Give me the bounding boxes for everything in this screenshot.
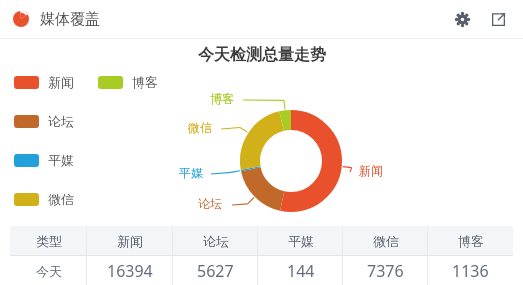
staticText: 新闻 [48, 74, 74, 90]
button[interactable]: Open externally [486, 7, 510, 31]
staticText: 类型 [36, 233, 62, 249]
staticText: 新闻 [359, 163, 383, 178]
button[interactable]: 新闻 [14, 74, 74, 90]
button[interactable]: 博客 [98, 74, 158, 90]
button[interactable]: 今天 [10, 256, 513, 285]
staticText: 论坛 [48, 113, 74, 129]
staticText: 7376 [367, 260, 404, 282]
staticText: 论坛 [203, 233, 229, 249]
staticText: 媒体覆盖 [40, 10, 100, 29]
button[interactable]: Settings [450, 7, 474, 31]
staticText: 平媒 [288, 233, 314, 249]
staticText: 博客 [458, 233, 484, 249]
staticText: 微信 [188, 120, 212, 135]
staticText: 5627 [197, 260, 234, 282]
staticText: 144 [287, 260, 315, 282]
staticText: 博客 [132, 74, 158, 90]
staticText: 微信 [373, 233, 399, 249]
staticText: 博客 [210, 91, 234, 106]
button[interactable]: 微信 [14, 191, 74, 207]
staticText: 新闻 [117, 233, 143, 249]
staticText: 今天 [36, 263, 62, 279]
staticText: 论坛 [198, 196, 222, 211]
staticText: 微信 [48, 191, 74, 207]
staticText: 平媒 [179, 165, 203, 180]
staticText: 今天检测总量走势 [198, 45, 326, 65]
staticText: 1136 [452, 260, 489, 282]
button[interactable]: 论坛 [14, 113, 74, 129]
staticText: 16394 [107, 260, 153, 282]
button[interactable]: 平媒 [14, 152, 74, 168]
staticText: 平媒 [48, 152, 74, 168]
